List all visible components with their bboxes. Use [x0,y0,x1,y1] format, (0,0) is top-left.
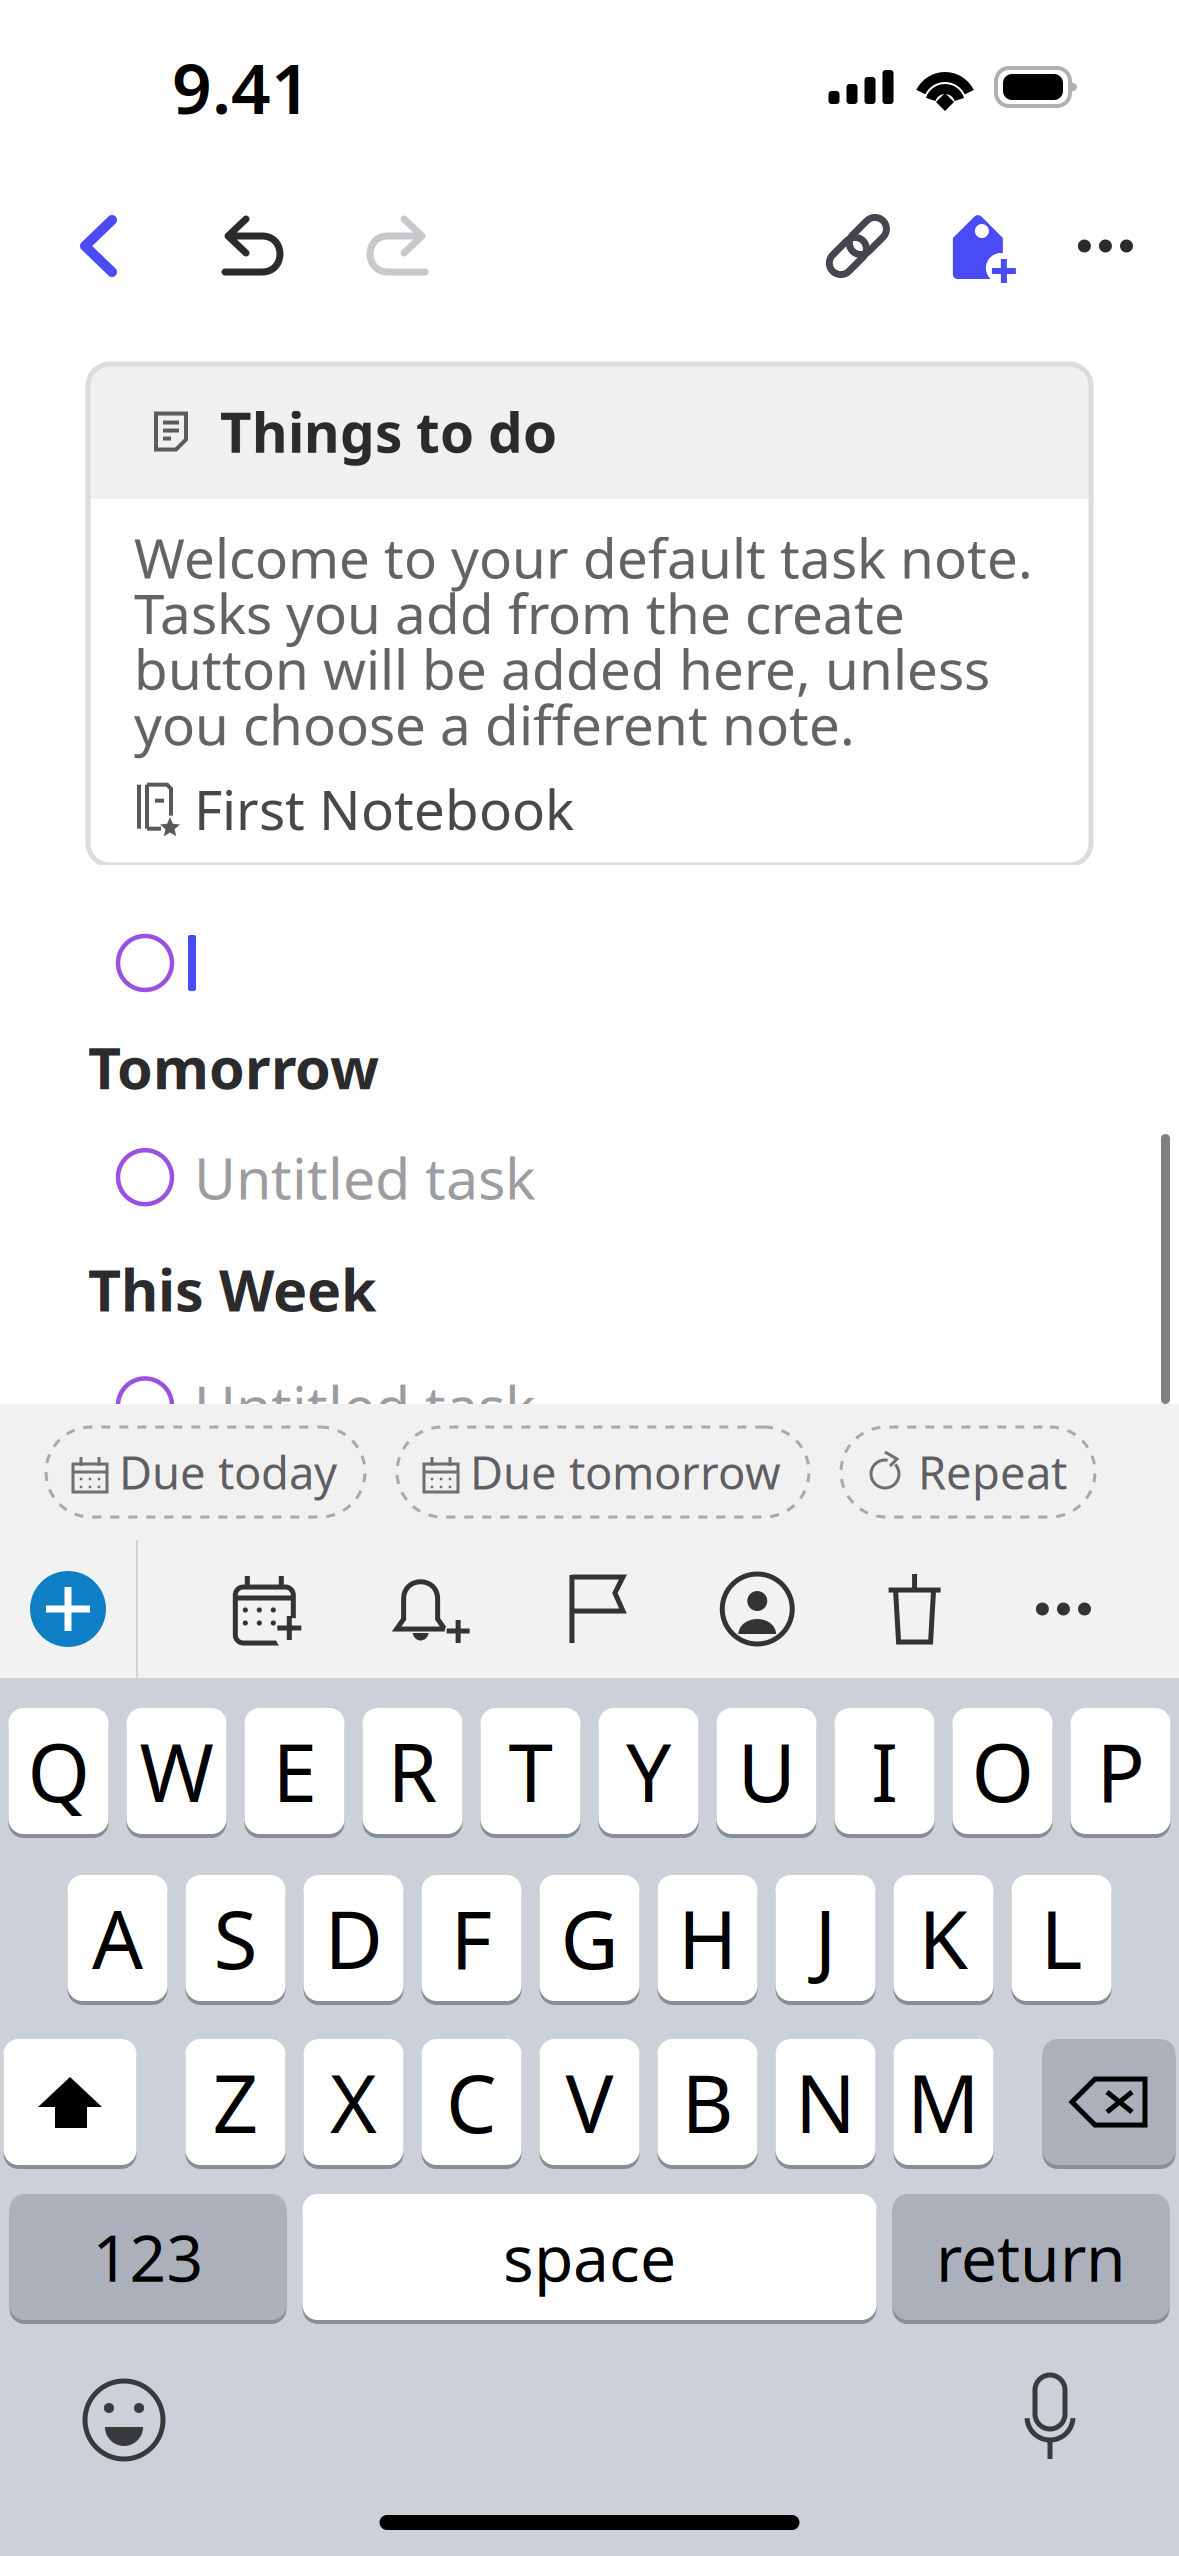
button[interactable]: E [244,1706,344,1836]
staticText: Things to do [220,395,557,468]
staticText: N [795,2049,856,2155]
staticText: R [387,1718,437,1824]
staticText: Due today [119,1442,337,1502]
staticText: T [508,1718,552,1824]
button[interactable]: P [1070,1706,1170,1836]
staticText: O [971,1718,1033,1824]
staticText: M [907,2049,980,2155]
button[interactable]: Back [50,197,148,295]
staticText: G [560,1885,618,1991]
button[interactable]: K [893,1873,993,2003]
button[interactable]: L [1011,1873,1111,2003]
button[interactable]: Insert link [806,205,910,287]
button[interactable]: C [421,2037,521,2167]
button[interactable]: Delete [1042,2037,1175,2167]
button[interactable]: A [67,1873,167,2003]
staticText: This Week [88,1251,377,1327]
staticText: P [1096,1718,1144,1824]
button[interactable]: R [362,1706,462,1836]
staticText: X [330,2049,377,2155]
staticText: space [503,2214,676,2299]
staticText: D [324,1885,382,1991]
button[interactable]: Emoji [84,2380,164,2460]
staticText: Q [27,1718,89,1824]
button[interactable]: V [539,2037,639,2167]
staticText: 9.41 [172,41,311,133]
staticText: K [918,1885,968,1991]
staticText: Tomorrow [88,1029,379,1105]
button[interactable]: Y [598,1706,698,1836]
staticText: 123 [92,2214,203,2299]
staticText: C [446,2049,497,2155]
button[interactable]: U [716,1706,816,1836]
button[interactable]: W [126,1706,226,1836]
button[interactable]: Add due date [230,1569,306,1649]
staticText: First Notebook [194,772,574,845]
staticText: Y [626,1718,671,1824]
button[interactable]: Undo [208,198,304,294]
button[interactable]: S [185,1873,285,2003]
staticText: S [213,1885,257,1991]
staticText: E [272,1718,316,1824]
button[interactable]: Delete [886,1570,944,1648]
staticText: W [139,1718,213,1824]
staticText: F [450,1885,492,1991]
button[interactable]: X [303,2037,403,2167]
button[interactable]: Redo [346,198,442,294]
staticText: L [1040,1885,1082,1991]
button[interactable]: space [302,2192,876,2322]
staticText: V [565,2049,613,2155]
staticText: A [92,1885,143,1991]
staticText: U [737,1718,795,1824]
button[interactable]: O [952,1706,1052,1836]
staticText: J [814,1885,836,1991]
button[interactable]: Dictate [1019,2374,1081,2466]
button[interactable]: More [1036,1602,1091,1615]
staticText: Due tomorrow [470,1442,781,1502]
button[interactable]: Q [8,1706,108,1836]
button[interactable]: H [657,1873,757,2003]
staticText: Untitled task [194,1367,536,1443]
button[interactable]: J [775,1873,875,2003]
button[interactable]: Repeat [841,1427,1095,1517]
button[interactable]: N [775,2037,875,2167]
button[interactable]: T [480,1706,580,1836]
staticText: Welcome to your default task note. Tasks… [134,521,1033,760]
staticText: I [871,1718,898,1824]
button[interactable]: Shift [3,2037,136,2167]
button[interactable]: B [657,2037,757,2167]
staticText: H [678,1885,737,1991]
button[interactable]: D [303,1873,403,2003]
button[interactable]: More options [1054,207,1157,284]
staticText: return [936,2214,1126,2299]
button[interactable]: Due tomorrow [397,1427,809,1517]
button[interactable]: F [421,1873,521,2003]
button[interactable]: I [834,1706,934,1836]
button[interactable]: Z [185,2037,285,2167]
button[interactable]: Add reminder [399,1568,475,1650]
button[interactable]: Flag [567,1569,629,1649]
button[interactable]: Due today [46,1427,365,1517]
staticText: Repeat [918,1442,1067,1502]
button[interactable]: 123 [9,2192,286,2322]
staticText: Z [212,2049,258,2155]
button[interactable]: Add tag [938,201,1028,291]
staticText: Untitled task [194,1139,536,1215]
button[interactable]: return [892,2192,1169,2322]
button[interactable]: Create [0,1540,136,1678]
button[interactable]: G [539,1873,639,2003]
button[interactable]: M [893,2037,993,2167]
staticText: B [681,2049,733,2155]
button[interactable]: Assign [721,1573,793,1645]
